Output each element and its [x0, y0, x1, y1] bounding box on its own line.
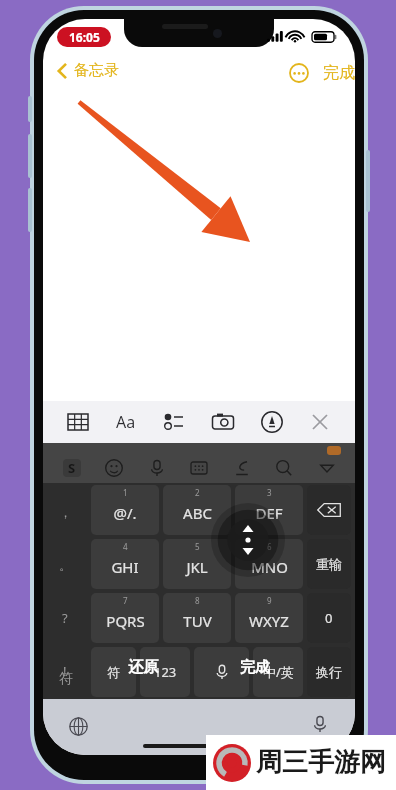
staticText: 2: [195, 487, 200, 498]
staticText: 5: [195, 541, 200, 552]
staticText: 完成: [240, 658, 270, 677]
button[interactable]: Markup: [250, 401, 294, 443]
button[interactable]: Sogou: [54, 454, 90, 482]
staticText: 中/英: [263, 663, 294, 681]
staticText: !: [63, 662, 67, 680]
staticText: Aa: [116, 411, 136, 433]
staticText: 16:05: [69, 29, 100, 45]
staticText: GHI: [111, 557, 139, 577]
staticText: PQRS: [106, 611, 145, 631]
staticText: TUV: [183, 611, 212, 631]
staticText: DEF: [255, 503, 283, 523]
button[interactable]: 6: [235, 539, 303, 589]
button[interactable]: ?: [43, 591, 87, 644]
staticText: MNO: [251, 557, 288, 577]
button[interactable]: Handwriting: [224, 454, 260, 482]
staticText: 7: [123, 595, 128, 606]
staticText: WXYZ: [249, 611, 289, 631]
button[interactable]: 符: [43, 659, 89, 699]
staticText: 符: [59, 670, 73, 688]
staticText: 符: [107, 664, 120, 680]
staticText: 0: [325, 609, 333, 627]
button[interactable]: Search: [266, 454, 302, 482]
staticText: ?: [62, 609, 68, 627]
button[interactable]: 备忘录: [53, 57, 123, 84]
staticText: 完成: [323, 63, 355, 83]
staticText: 9: [267, 595, 272, 606]
staticText: JKL: [186, 557, 208, 577]
button[interactable]: Collapse: [309, 454, 345, 482]
button[interactable]: 2: [163, 485, 231, 535]
button[interactable]: Table: [56, 401, 100, 443]
button[interactable]: 换行: [307, 647, 351, 697]
staticText: ABC: [183, 503, 212, 523]
button[interactable]: Camera: [201, 401, 245, 443]
button[interactable]: 7: [91, 593, 159, 643]
button[interactable]: Emoji: [96, 454, 132, 482]
button[interactable]: Format text: [104, 401, 148, 443]
staticText: 还原: [128, 658, 158, 677]
staticText: 8: [195, 595, 200, 606]
button[interactable]: Voice input: [139, 454, 175, 482]
button[interactable]: 1: [91, 485, 159, 535]
button[interactable]: ，: [43, 485, 87, 538]
button[interactable]: 3: [235, 485, 303, 535]
staticText: 备忘录: [74, 61, 119, 80]
button[interactable]: Voice: [194, 647, 249, 697]
button[interactable]: 4: [91, 539, 159, 589]
button[interactable]: 中/英: [253, 647, 303, 697]
staticText: @/.: [113, 503, 137, 523]
button[interactable]: Keyboard layout: [181, 454, 217, 482]
button[interactable]: Checklist: [153, 401, 197, 443]
staticText: S: [68, 459, 76, 477]
button[interactable]: 123: [140, 647, 190, 697]
button[interactable]: 9: [235, 593, 303, 643]
button[interactable]: 5: [163, 539, 231, 589]
staticText: 3: [267, 487, 272, 498]
button[interactable]: 重输: [307, 539, 351, 589]
button[interactable]: Close keyboard: [298, 401, 342, 443]
button[interactable]: 。: [43, 538, 87, 591]
button[interactable]: ⌫: [307, 485, 351, 535]
staticText: 周三手游网: [256, 746, 386, 779]
staticText: 1: [123, 487, 128, 498]
staticText: ，: [59, 504, 72, 520]
button[interactable]: 8: [163, 593, 231, 643]
button[interactable]: Switch language: [65, 713, 91, 739]
staticText: 123: [154, 663, 177, 681]
button[interactable]: Dictation: [307, 711, 333, 737]
staticText: 4: [123, 541, 128, 552]
staticText: 6: [267, 541, 272, 552]
button[interactable]: More options: [283, 57, 315, 89]
staticText: 换行: [316, 664, 342, 680]
button[interactable]: !: [43, 644, 87, 697]
button[interactable]: 符: [91, 647, 136, 697]
staticText: 重输: [316, 556, 342, 572]
button[interactable]: 0: [307, 593, 351, 643]
staticText: 。: [59, 557, 72, 573]
button[interactable]: 完成: [319, 57, 355, 89]
